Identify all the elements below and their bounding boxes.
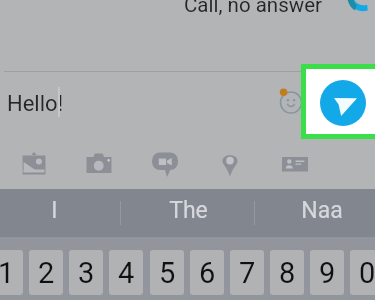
staticText: Naa [301, 197, 343, 224]
button[interactable]: Location [206, 140, 254, 188]
button[interactable]: 3 [69, 250, 103, 295]
button[interactable]: Send [320, 80, 366, 126]
staticText: I [51, 197, 58, 224]
staticText: 4 [118, 256, 135, 290]
staticText: 5 [159, 256, 176, 290]
staticText: 6 [199, 256, 216, 290]
staticText: 3 [78, 256, 95, 290]
button[interactable]: Emoji [277, 87, 305, 115]
button[interactable]: Gallery [10, 140, 58, 188]
button[interactable]: 2 [29, 250, 63, 295]
button[interactable]: 1 [0, 250, 23, 295]
button[interactable]: Sticker [141, 140, 189, 188]
button[interactable]: 8 [270, 250, 304, 295]
button[interactable]: Camera [75, 140, 123, 188]
staticText: 7 [239, 256, 256, 290]
button[interactable]: 7 [230, 250, 264, 295]
button[interactable]: Call [341, 0, 368, 16]
staticText: Call, no answer [184, 0, 322, 17]
staticText: 8 [279, 256, 296, 290]
staticText: 2 [38, 256, 55, 290]
button[interactable]: I [0, 186, 121, 234]
button[interactable]: 4 [109, 250, 143, 295]
button[interactable]: The [121, 186, 255, 234]
staticText: 0 [359, 256, 375, 290]
staticText: 1 [0, 256, 15, 290]
button[interactable]: 0 [350, 250, 375, 295]
staticText: The [169, 197, 208, 224]
button[interactable]: Naa [255, 186, 375, 234]
button[interactable]: Contact [271, 140, 319, 188]
button[interactable]: 6 [190, 250, 224, 295]
button[interactable]: 5 [150, 250, 184, 295]
staticText: 9 [319, 256, 336, 290]
button[interactable]: 9 [310, 250, 344, 295]
staticText: Hello! [7, 91, 64, 117]
